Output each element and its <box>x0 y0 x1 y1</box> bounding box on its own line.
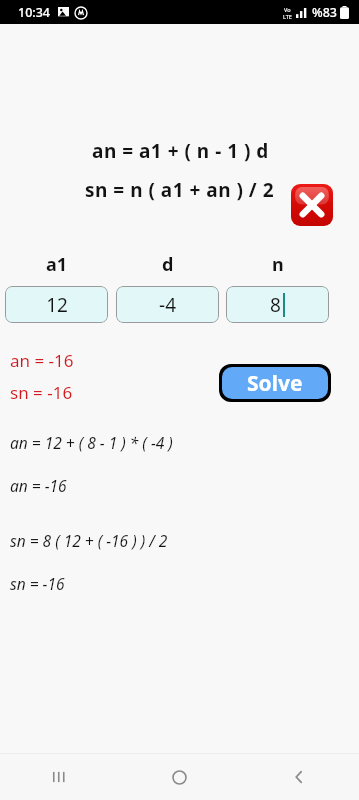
button[interactable]: Home <box>119 754 239 800</box>
button[interactable]: -4 <box>116 286 219 323</box>
staticText: %83 <box>312 4 337 21</box>
staticText: d <box>162 252 174 277</box>
staticText: n <box>272 252 284 277</box>
staticText: an = -16 <box>10 349 74 372</box>
staticText: Solve <box>247 369 303 398</box>
staticText: an = -16 <box>10 475 67 496</box>
staticText: sn = -16 <box>10 381 73 404</box>
staticText: sn = 8 ( 12 + ( -16 ) ) / 2 <box>10 530 168 551</box>
button[interactable]: Recents <box>0 754 119 800</box>
button[interactable]: 12 <box>5 286 108 323</box>
staticText: Vo <box>284 6 291 13</box>
staticText: LTE <box>283 13 292 20</box>
staticText: sn = -16 <box>10 573 65 594</box>
staticText: -4 <box>159 292 176 318</box>
button[interactable]: Back <box>239 754 359 800</box>
staticText: 12 <box>46 292 68 318</box>
button[interactable]: Clear <box>291 184 333 226</box>
staticText: 8 <box>270 292 281 318</box>
staticText: sn = n ( a1 + an ) / 2 <box>85 177 275 203</box>
staticText: an = 12 + ( 8 - 1 ) * ( -4 ) <box>10 432 173 453</box>
staticText: 10:34 <box>18 4 51 21</box>
staticText: an = a1 + ( n - 1 ) d <box>92 138 269 164</box>
staticText: a1 <box>46 252 68 277</box>
button[interactable]: Solve <box>222 367 328 399</box>
button[interactable]: 8 <box>226 286 329 323</box>
